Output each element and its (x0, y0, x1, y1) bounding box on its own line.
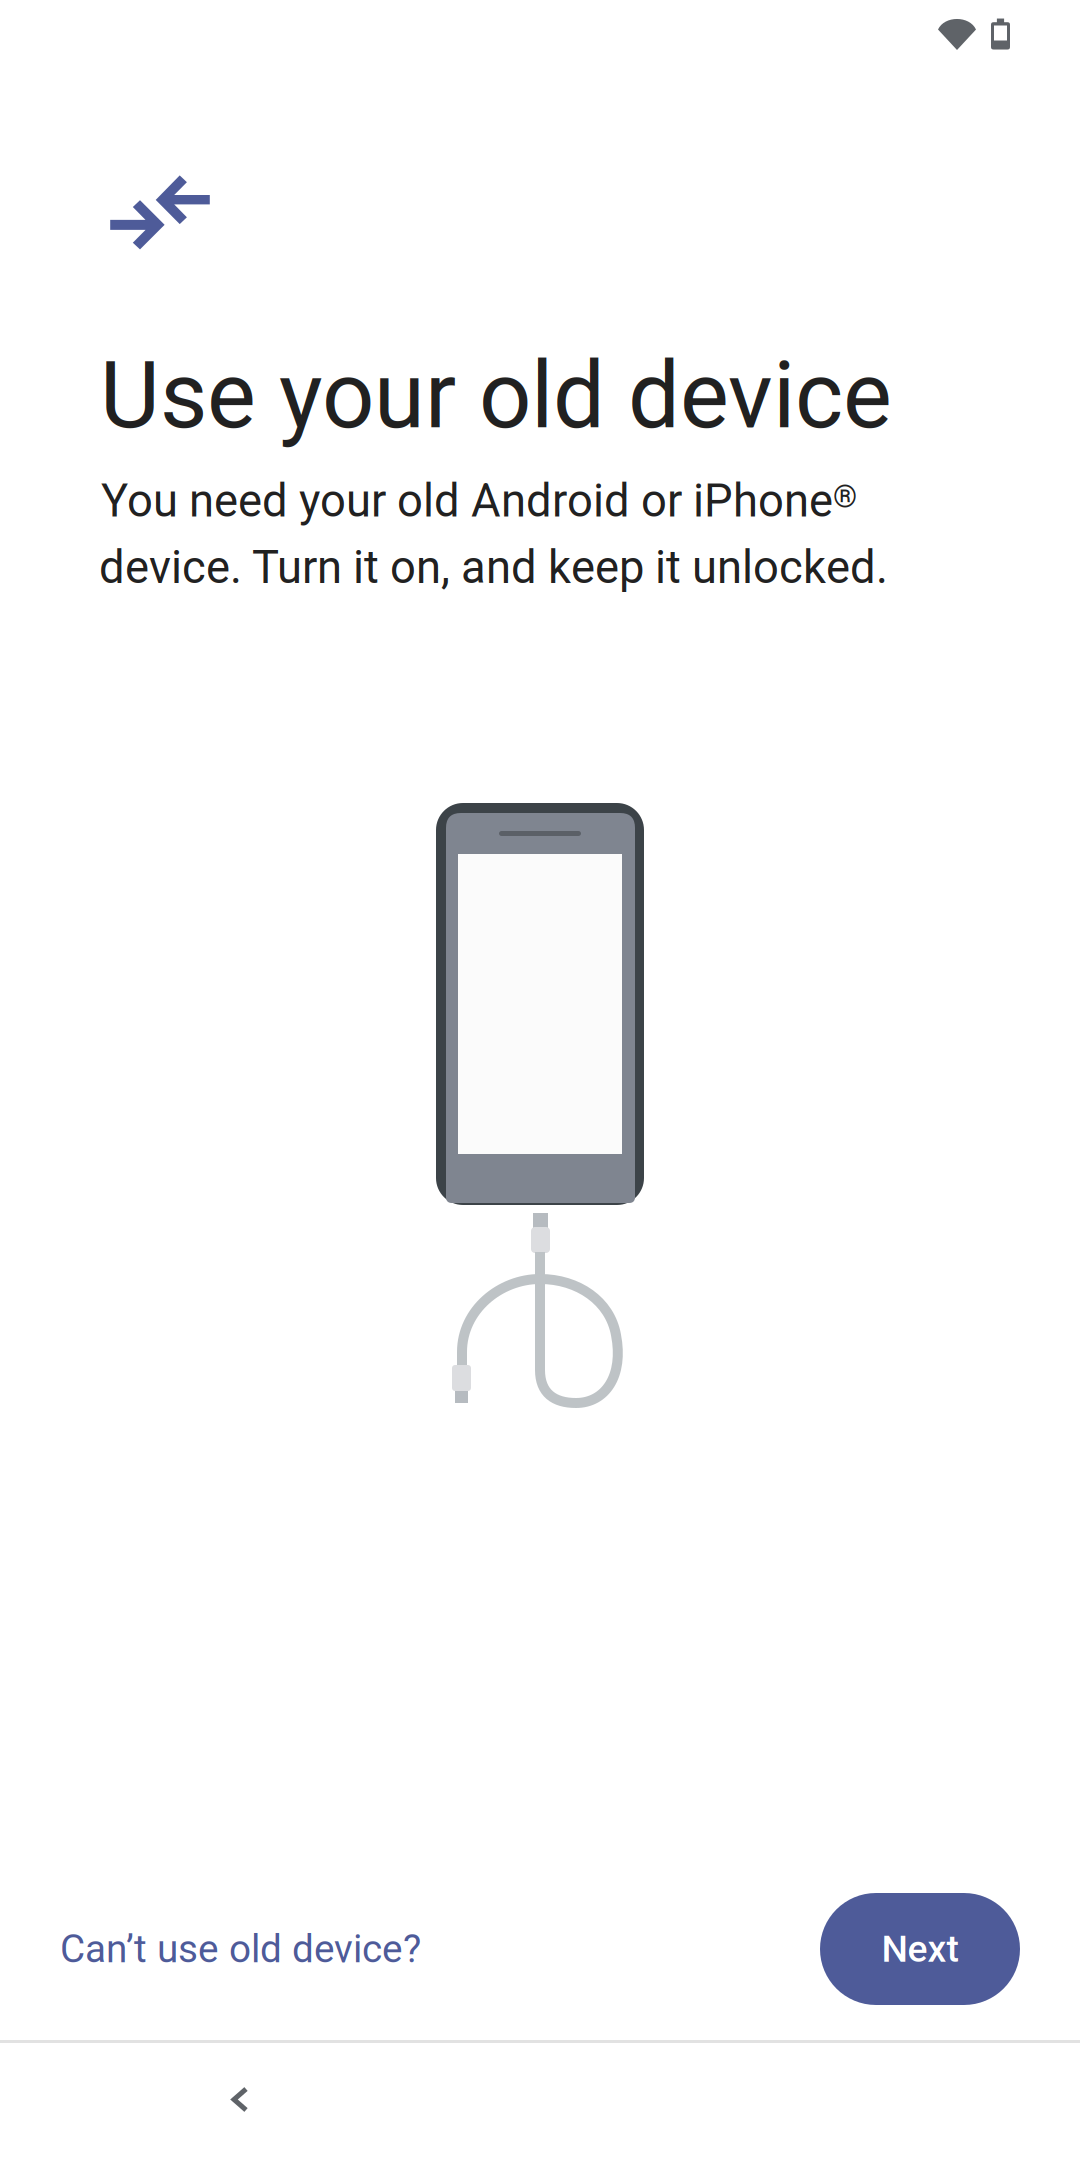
staticText: Next (881, 1927, 958, 1971)
staticText: You need your old Android or iPhone® (101, 475, 857, 527)
button[interactable]: Back (190, 2045, 290, 2154)
staticText: device. Turn it on, and keep it unlocked… (99, 541, 888, 594)
button[interactable]: Can’t use old device? (50, 1910, 431, 1988)
staticText: Use your old device (100, 342, 892, 450)
button[interactable]: Next (820, 1893, 1020, 2005)
staticText: Can’t use old device? (60, 1926, 421, 1972)
